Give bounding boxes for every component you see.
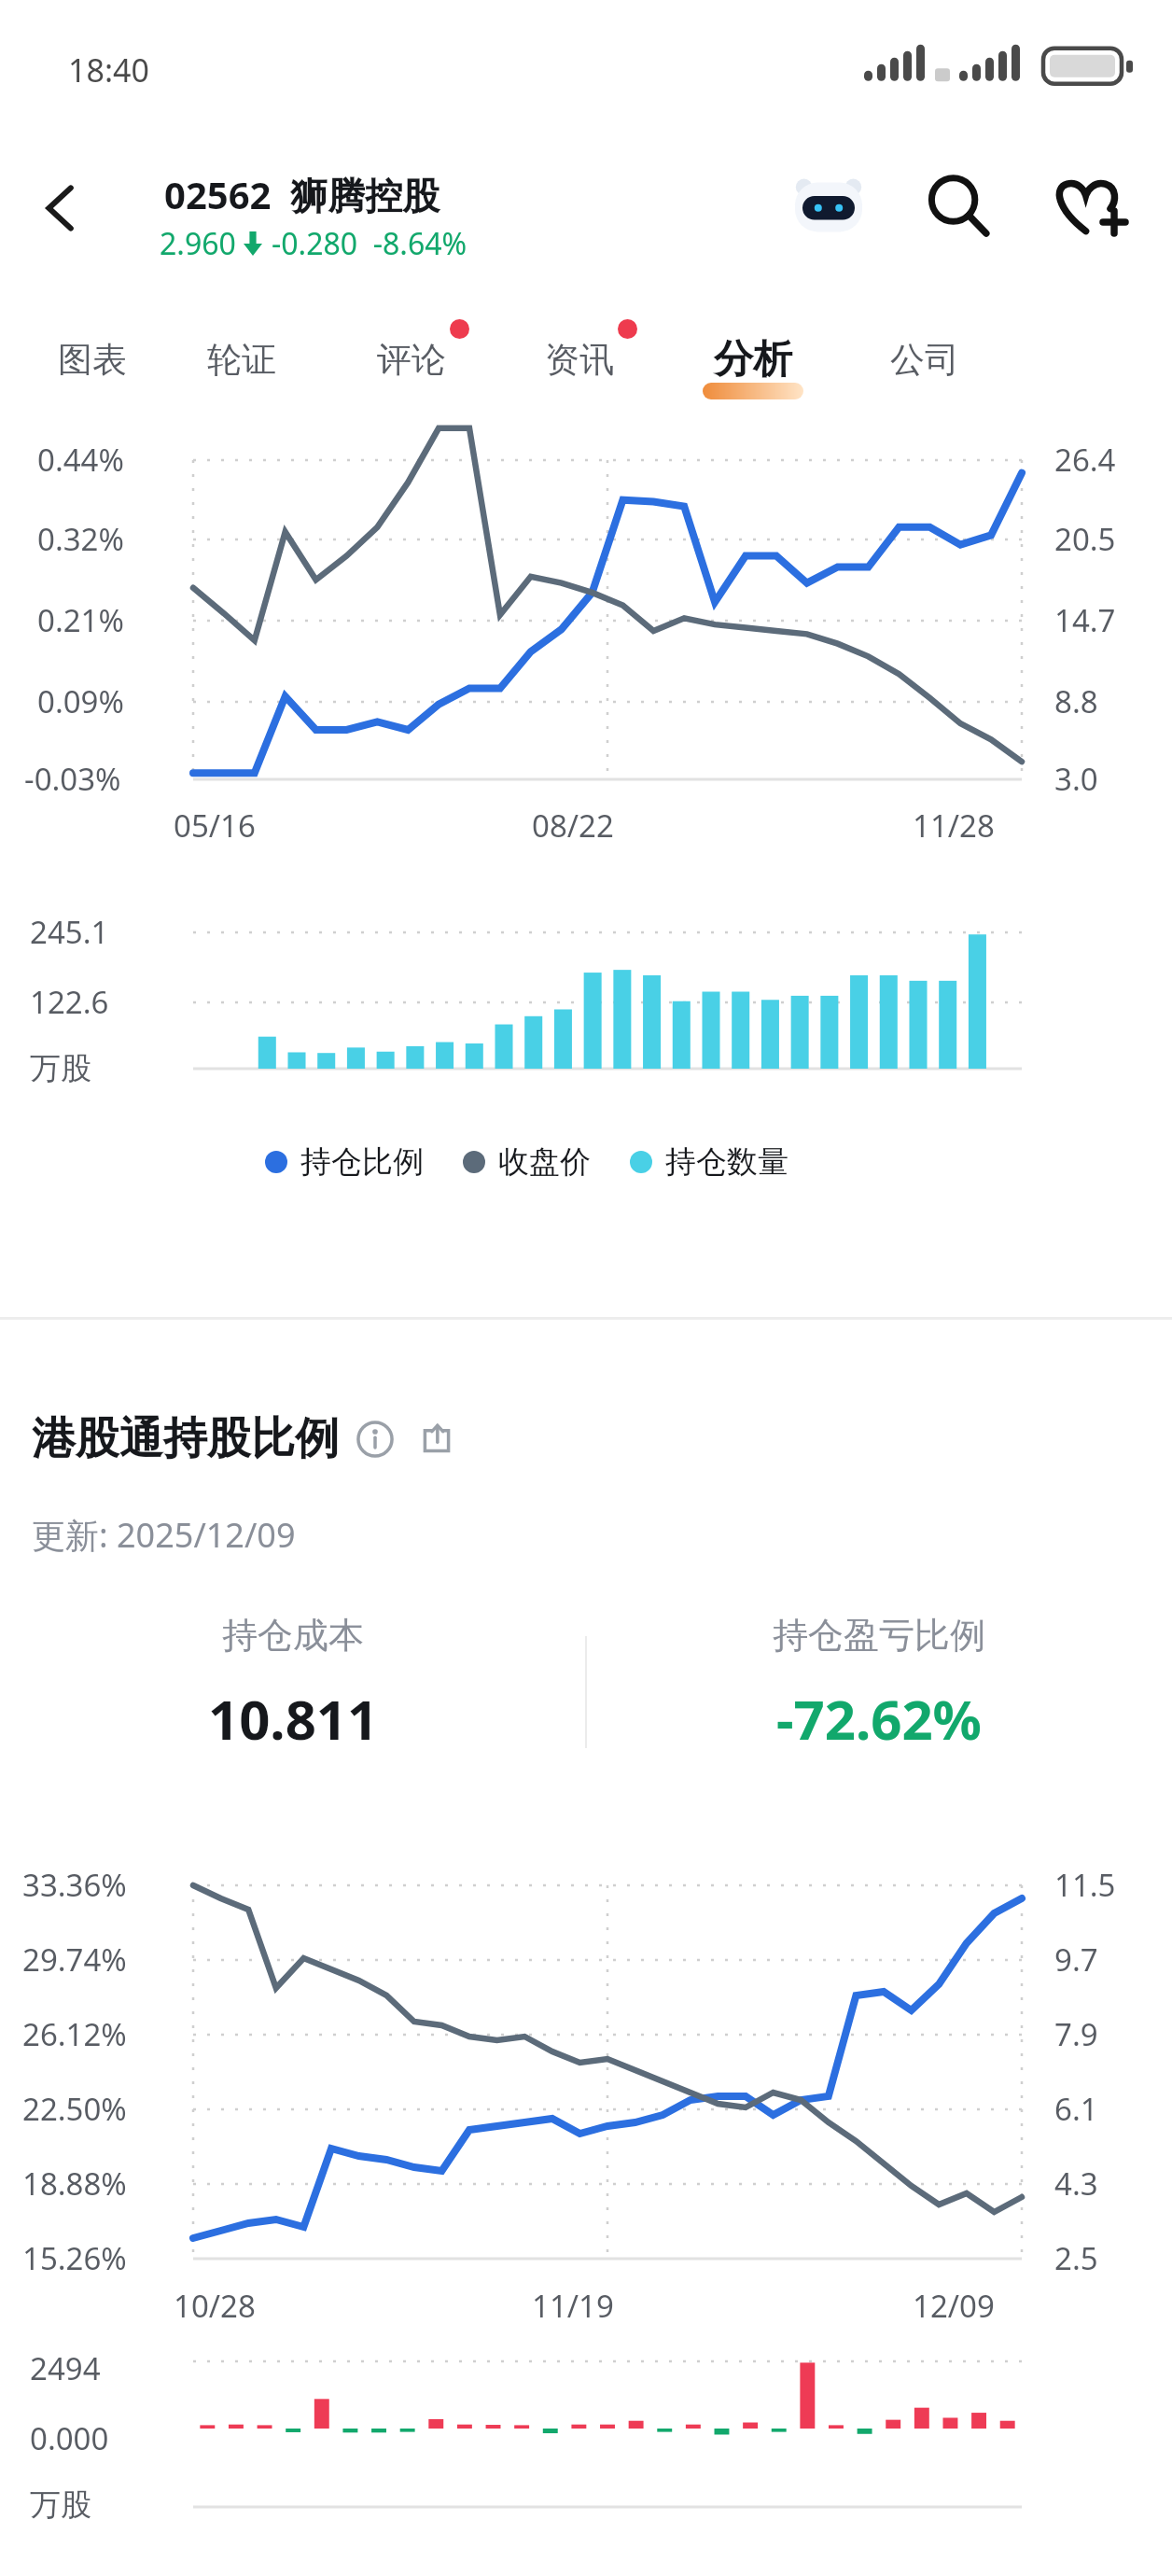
staticText: 10/28 [174, 2285, 256, 2327]
staticText: 7.9 [1054, 2013, 1098, 2055]
staticText: 0.09% [37, 680, 124, 722]
staticText: 持仓比例 [300, 1142, 424, 1182]
staticText: 245.1 [30, 911, 109, 953]
staticText: 3.0 [1054, 758, 1098, 800]
staticText: 持仓数量 [665, 1142, 788, 1182]
staticText: -0.03% [24, 758, 121, 800]
button[interactable]: 分析 [691, 314, 816, 405]
staticText: 0.000 [30, 2417, 109, 2459]
staticText: 10.811 [208, 1682, 379, 1756]
staticText: 0.21% [37, 599, 124, 641]
staticText: 18:40 [68, 49, 149, 91]
staticText: 08/22 [532, 805, 614, 847]
staticText: 6.1 [1054, 2088, 1098, 2130]
staticText: 2494 [30, 2347, 101, 2389]
button[interactable]: 评论 [353, 314, 470, 405]
staticText: 11/28 [913, 805, 995, 847]
staticText: 评论 [377, 338, 446, 382]
button[interactable]: Back [19, 166, 103, 250]
staticText: 持仓盈亏比例 [773, 1613, 985, 1658]
staticText: 4.3 [1054, 2163, 1098, 2205]
button[interactable]: AI assistant [791, 170, 866, 245]
staticText: 11/19 [532, 2285, 614, 2327]
staticText: 公司 [890, 338, 959, 382]
staticText: 持仓成本 [222, 1613, 364, 1658]
staticText: 收盘价 [498, 1142, 591, 1182]
staticText: 2.5 [1054, 2237, 1098, 2279]
staticText: -72.62% [776, 1682, 982, 1756]
staticText: 11.5 [1054, 1864, 1116, 1906]
staticText: 8.8 [1054, 680, 1098, 722]
staticText: 122.6 [30, 981, 109, 1023]
staticText: 33.36% [22, 1864, 127, 1906]
staticText: 15.26% [22, 2237, 127, 2279]
staticText: 12/09 [913, 2285, 995, 2327]
staticText: 9.7 [1054, 1939, 1098, 1981]
button[interactable]: 资讯 [521, 314, 638, 405]
button[interactable]: 公司 [866, 314, 984, 405]
button[interactable]: Add to watchlist [1051, 170, 1125, 245]
button[interactable]: Info [356, 1420, 395, 1459]
staticText: 26.4 [1054, 439, 1116, 481]
staticText: -0.280 -8.64% [272, 223, 467, 264]
staticText: 更新: 2025/12/09 [32, 1512, 296, 1558]
staticText: 资讯 [545, 338, 614, 382]
staticText: 万股 [30, 2485, 91, 2525]
staticText: 轮证 [207, 338, 276, 382]
button[interactable]: Search [922, 170, 997, 245]
button[interactable]: 图表 [34, 314, 151, 405]
staticText: 0.44% [37, 439, 124, 481]
staticText: 2.960 [160, 223, 236, 264]
staticText: 05/16 [174, 805, 256, 847]
staticText: 02562 狮腾控股 [164, 169, 440, 220]
staticText: 18.88% [22, 2163, 127, 2205]
staticText: 分析 [714, 335, 792, 385]
staticText: 22.50% [22, 2088, 127, 2130]
button[interactable]: Share [417, 1420, 456, 1459]
staticText: 图表 [58, 338, 127, 382]
staticText: 0.32% [37, 518, 124, 560]
staticText: 29.74% [22, 1939, 127, 1981]
staticText: 万股 [30, 1049, 91, 1088]
staticText: 20.5 [1054, 518, 1116, 560]
staticText: 26.12% [22, 2013, 127, 2055]
staticText: 港股通持股比例 [32, 1411, 339, 1466]
button[interactable]: 轮证 [183, 314, 300, 405]
staticText: 14.7 [1054, 599, 1116, 641]
